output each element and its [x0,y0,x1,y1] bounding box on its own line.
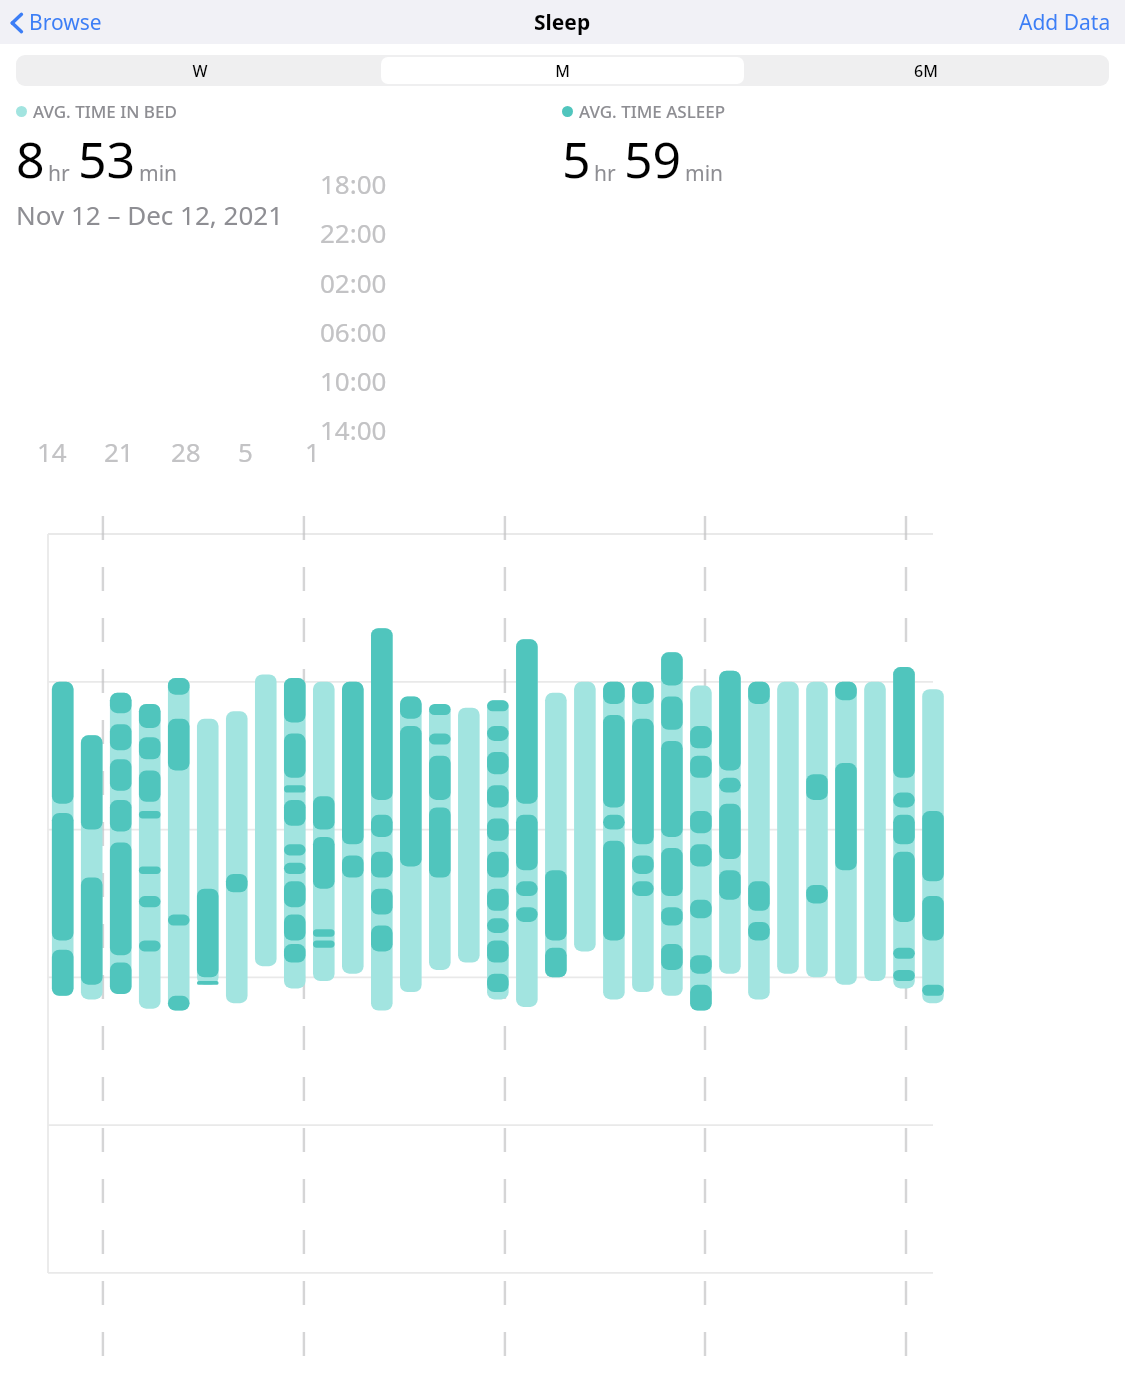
staticText: 1 [305,434,320,469]
staticText: min [685,159,724,188]
staticText: 06:00 [320,314,387,349]
staticText: 18:00 [320,166,387,201]
staticText: 28 [171,434,201,469]
staticText: 53 [78,125,136,193]
staticText: min [139,159,178,188]
staticText: 14:00 [320,412,387,447]
button[interactable]: 6M [744,57,1107,84]
staticText: 21 [104,434,134,469]
staticText: 5 [238,434,253,469]
staticText: 02:00 [320,265,387,300]
button[interactable]: W [18,57,381,84]
staticText: AVG. TIME ASLEEP [579,100,726,123]
staticText: 8 [16,125,45,193]
staticText: 14 [37,434,67,469]
staticText: 59 [624,125,682,193]
staticText: 5 [562,125,591,193]
staticText: 10:00 [320,363,387,398]
staticText: AVG. TIME IN BED [33,100,177,123]
staticText: hr [594,159,616,188]
staticText: W [192,60,208,82]
staticText: Nov 12 – Dec 12, 2021 [16,197,284,232]
staticText: 22:00 [320,215,387,250]
staticText: Add Data [1019,8,1111,37]
button[interactable]: M [381,57,744,84]
staticText: Browse [29,8,102,37]
button[interactable]: Browse [6,4,106,41]
staticText: M [555,60,570,82]
staticText: hr [48,159,70,188]
staticText: 6M [914,60,938,82]
button[interactable]: Add Data [1015,4,1115,41]
staticText: Sleep [534,8,591,37]
